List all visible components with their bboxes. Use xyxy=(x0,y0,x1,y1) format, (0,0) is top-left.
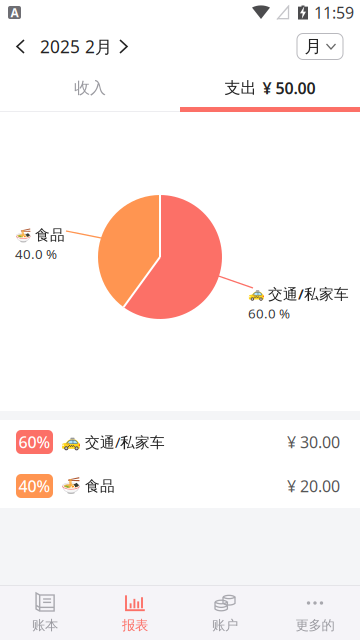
button[interactable]: 报表 xyxy=(90,585,180,640)
button[interactable]: 更多的 xyxy=(270,585,360,640)
staticText: 60% xyxy=(18,431,50,453)
staticText: 🚕 xyxy=(248,286,265,301)
button[interactable]: 60% xyxy=(0,420,360,464)
staticText: 40% xyxy=(18,475,50,497)
staticText: 🚕 xyxy=(61,433,81,451)
staticText: 账本 xyxy=(32,617,58,633)
button[interactable]: 收入 xyxy=(0,68,180,112)
staticText: 账户 xyxy=(212,617,238,633)
staticText: 交通/私家车 xyxy=(85,432,165,452)
staticText: 2025 2月 xyxy=(40,35,112,58)
staticText: ¥ 20.00 xyxy=(287,475,340,497)
staticText: 食品 xyxy=(35,226,65,244)
button[interactable]: Next month xyxy=(112,28,139,64)
button[interactable]: 40% xyxy=(0,464,360,508)
staticText: 收入 xyxy=(74,78,106,98)
staticText: 11:59 xyxy=(314,2,354,23)
button[interactable]: 支出 xyxy=(180,68,360,112)
staticText: 更多的 xyxy=(295,617,334,633)
staticText: 交通/私家车 xyxy=(268,284,349,303)
button[interactable]: Previous month xyxy=(7,28,40,64)
staticText: ¥ 30.00 xyxy=(287,431,340,453)
staticText: 🍜 xyxy=(61,477,81,495)
staticText: ¥ 50.00 xyxy=(262,77,315,99)
staticText: A xyxy=(10,4,18,20)
button[interactable]: 账户 xyxy=(180,585,270,640)
staticText: 食品 xyxy=(85,477,115,495)
staticText: 报表 xyxy=(122,617,148,633)
staticText: 40.0 % xyxy=(15,245,57,263)
staticText: 支出 xyxy=(224,78,256,98)
button[interactable]: 账本 xyxy=(0,585,90,640)
staticText: 月 xyxy=(304,36,321,57)
staticText: 🍜 xyxy=(15,227,32,243)
button[interactable]: 月 xyxy=(297,33,343,59)
staticText: 60.0 % xyxy=(248,304,290,322)
